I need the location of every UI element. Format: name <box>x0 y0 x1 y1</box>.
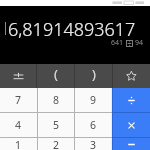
button[interactable]: 8 <box>38 88 74 112</box>
other: Divide <box>127 96 136 105</box>
button[interactable]: 1 <box>0 138 37 150</box>
staticText: 1 <box>15 138 22 150</box>
other: Subtract <box>127 140 136 149</box>
staticText: 4 <box>15 118 22 132</box>
staticText: ) <box>92 65 96 83</box>
staticText: 8 <box>53 93 60 107</box>
staticText: 7 <box>15 93 22 107</box>
button[interactable]: 9 <box>75 88 111 112</box>
button[interactable]: Plus minus <box>0 64 36 88</box>
button[interactable]: 6 <box>75 113 111 137</box>
staticText: 6,81914893617 <box>8 17 136 42</box>
staticText: 3 <box>90 138 97 150</box>
button[interactable]: Divide <box>112 88 150 112</box>
button[interactable]: 7 <box>0 88 37 112</box>
staticText: 5 <box>53 118 60 132</box>
button[interactable]: ) <box>75 64 112 88</box>
staticText: 94 <box>135 38 144 48</box>
staticText: ( <box>54 65 58 83</box>
button[interactable]: Favorite <box>113 64 150 88</box>
button[interactable]: 4 <box>0 113 37 137</box>
button[interactable]: 5 <box>38 113 74 137</box>
staticText: 641 <box>111 38 124 48</box>
button[interactable]: 2 <box>38 138 74 150</box>
staticText: 2 <box>53 138 60 150</box>
staticText: 9 <box>90 93 97 107</box>
button[interactable]: 3 <box>75 138 111 150</box>
staticText: 6 <box>90 118 97 132</box>
other: Multiply <box>127 121 136 130</box>
button[interactable]: ( <box>37 64 74 88</box>
button[interactable]: Subtract <box>112 138 150 150</box>
button[interactable]: Multiply <box>112 113 150 137</box>
